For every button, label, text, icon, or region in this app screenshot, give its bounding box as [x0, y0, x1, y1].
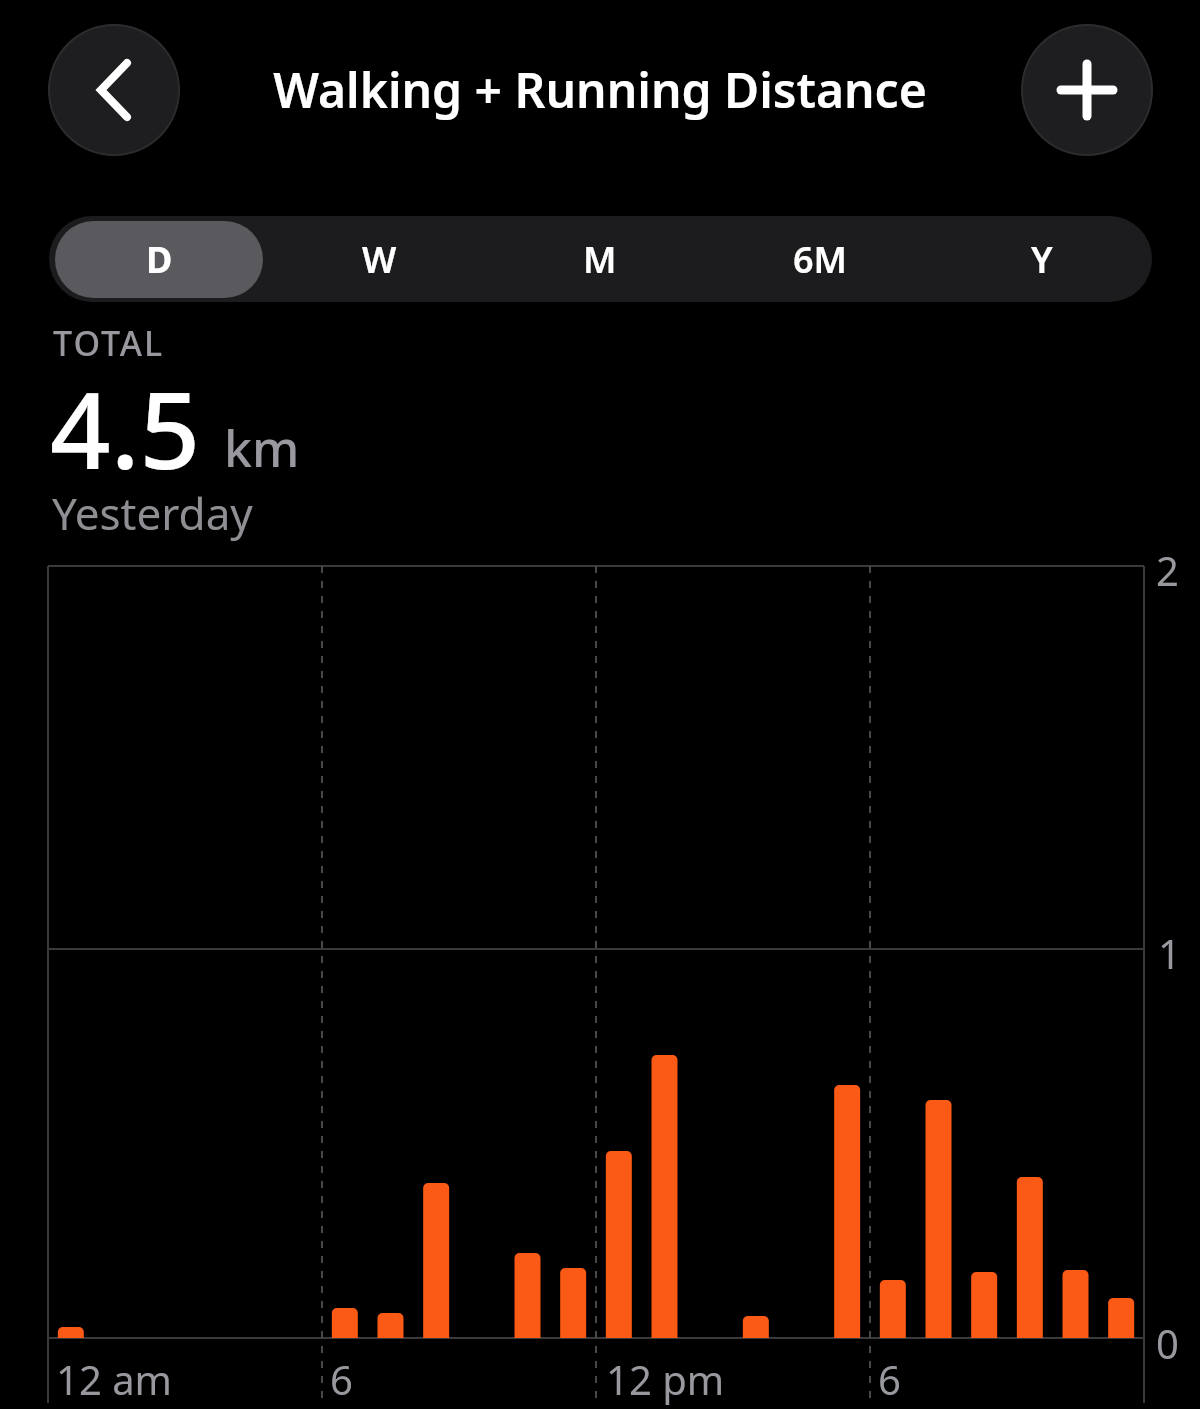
staticText: 6M: [793, 235, 848, 284]
staticText: M: [583, 235, 617, 284]
staticText: Walking + Running Distance: [0, 57, 1200, 122]
button[interactable]: D: [49, 216, 269, 302]
staticText: TOTAL: [53, 320, 165, 366]
staticText: Yesterday: [52, 483, 253, 543]
staticText: 12 pm: [606, 1352, 725, 1406]
button[interactable]: [1021, 24, 1153, 156]
button[interactable]: Y: [931, 216, 1152, 302]
staticText: 6: [330, 1352, 353, 1406]
button[interactable]: M: [489, 216, 710, 302]
button[interactable]: 6M: [710, 216, 931, 302]
staticText: Y: [1031, 235, 1053, 284]
staticText: 6: [878, 1352, 901, 1406]
button[interactable]: W: [269, 216, 489, 302]
staticText: 4.5: [50, 356, 201, 500]
staticText: D: [146, 235, 173, 284]
staticText: 12 am: [56, 1352, 172, 1406]
staticText: W: [362, 235, 397, 284]
staticText: km: [224, 414, 300, 482]
staticText: 2: [1156, 543, 1179, 597]
staticText: 1: [1158, 926, 1181, 980]
button[interactable]: [48, 24, 180, 156]
staticText: 0: [1156, 1316, 1179, 1370]
